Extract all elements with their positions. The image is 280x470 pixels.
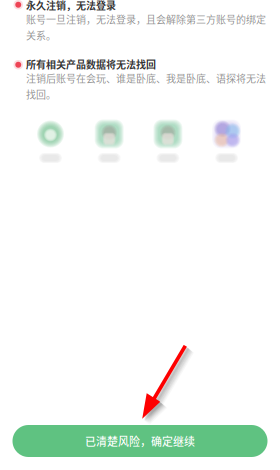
staticText: 永久注销，无法登录 bbox=[26, 0, 116, 12]
staticText: 注销后账号在会玩、谁是卧底、我是卧底、语探将无法找回。 bbox=[26, 71, 266, 101]
staticText: 所有相关产品数据将无法找回 bbox=[26, 57, 156, 71]
button[interactable]: 已清楚风险，确定继续 bbox=[12, 425, 267, 457]
staticText: 账号一旦注销，无法登录，且会解除第三方账号的绑定关系。 bbox=[26, 12, 266, 42]
staticText: 已清楚风险，确定继续 bbox=[85, 433, 195, 449]
